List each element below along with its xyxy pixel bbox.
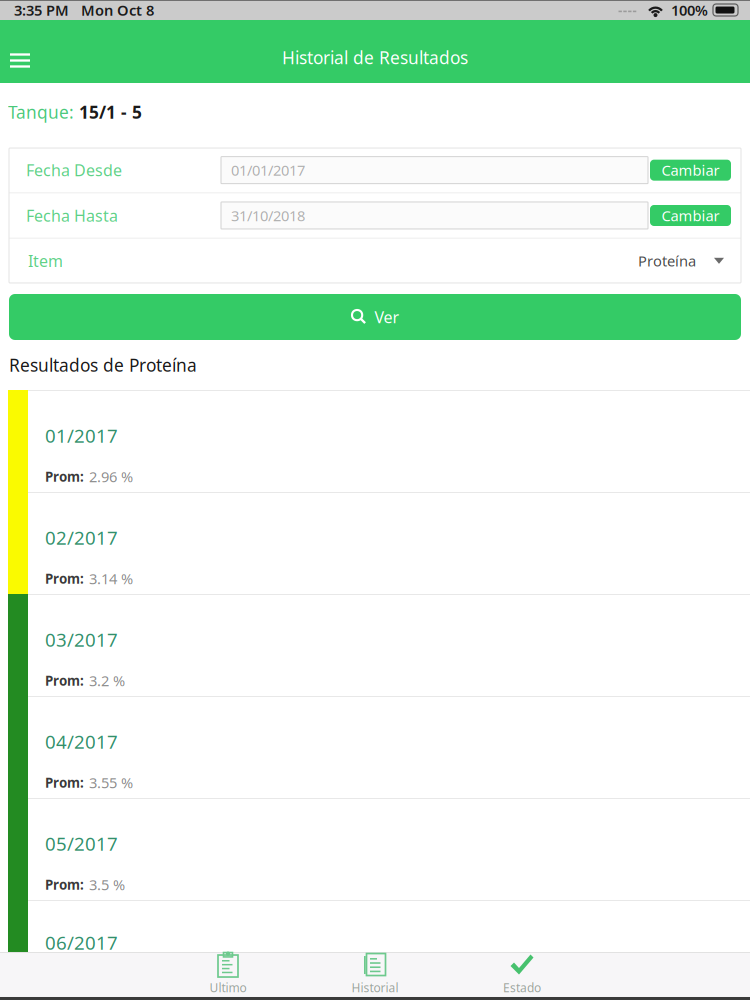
staticText: Fecha Hasta (26, 205, 118, 226)
staticText: 04/2017 (45, 729, 118, 754)
button[interactable]: 02/2017 (0, 492, 750, 594)
staticText: Resultados de Proteína (9, 353, 197, 376)
staticText: 03/2017 (45, 627, 118, 652)
staticText: Cambiar (661, 206, 719, 225)
staticText: 15/1 - 5 (79, 100, 142, 123)
staticText: Ultimo (209, 979, 246, 995)
staticText: 100% (671, 0, 708, 20)
staticText: 3.55 % (89, 773, 133, 792)
staticText: 31/10/2018 (231, 206, 305, 225)
staticText: 05/2017 (45, 831, 118, 856)
staticText: 01/2017 (45, 423, 118, 448)
button[interactable]: Historial (301, 951, 448, 999)
staticText: Tanque: (8, 100, 79, 123)
staticText: Historial de Resultados (282, 46, 468, 69)
staticText: 2.96 % (89, 467, 133, 486)
staticText: Historial (351, 979, 398, 995)
staticText: Ver (374, 306, 399, 328)
button[interactable]: Menu (0, 20, 46, 83)
staticText: Proteína (638, 251, 696, 271)
staticText: Prom: (45, 774, 84, 791)
staticText: 3.2 % (89, 671, 125, 690)
staticText: 3.14 % (89, 569, 133, 588)
button[interactable]: Cambiar (650, 160, 731, 181)
staticText: 3:35 PM (14, 0, 69, 20)
staticText: Prom: (45, 672, 84, 689)
staticText (69, 0, 81, 20)
button[interactable]: 01/2017 (0, 390, 750, 492)
button[interactable]: Estado (448, 951, 595, 999)
button[interactable]: 05/2017 (0, 798, 750, 900)
staticText: Prom: (45, 468, 84, 485)
staticText: Mon Oct 8 (81, 0, 154, 20)
staticText: Fecha Desde (26, 159, 122, 181)
staticText: 02/2017 (45, 525, 118, 550)
button[interactable]: 03/2017 (0, 594, 750, 696)
staticText: 01/01/2017 (231, 160, 305, 180)
staticText: Prom: (45, 876, 84, 893)
staticText: 06/2017 (45, 930, 118, 955)
button[interactable]: Cambiar (650, 205, 731, 226)
staticText: Estado (503, 979, 541, 995)
staticText: 3.5 % (89, 875, 125, 894)
staticText: Item (28, 250, 63, 271)
button[interactable]: 06/2017 (0, 900, 750, 952)
staticText: Cambiar (661, 160, 719, 180)
button[interactable]: Ver (9, 294, 741, 340)
button[interactable]: 04/2017 (0, 696, 750, 798)
button[interactable]: Ultimo (154, 951, 301, 999)
button[interactable]: Proteína (638, 239, 724, 283)
staticText: Prom: (45, 570, 84, 587)
